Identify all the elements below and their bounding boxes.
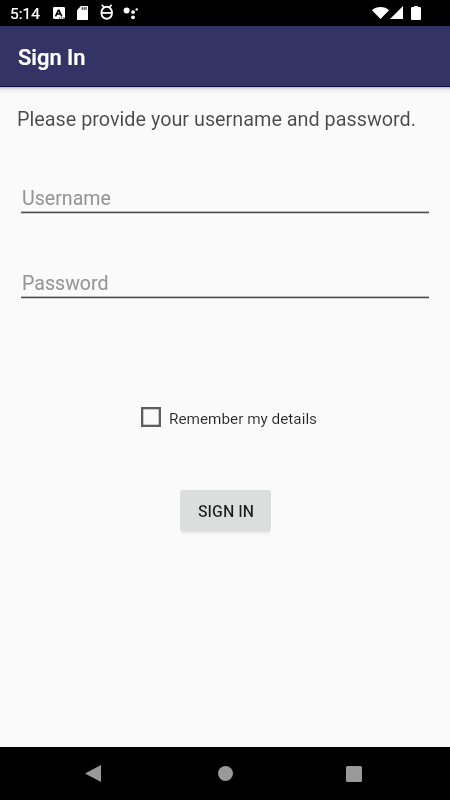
staticText: Username <box>22 187 111 210</box>
button[interactable]: SIGN IN <box>180 490 271 531</box>
staticText: Sign In <box>18 45 86 71</box>
staticText: Please provide your username and passwor… <box>17 108 416 131</box>
button[interactable]: Remember my details <box>136 402 321 432</box>
button[interactable]: Username <box>21 181 429 215</box>
staticText: Password <box>22 272 109 295</box>
button[interactable]: Home <box>195 747 255 800</box>
button[interactable]: Password <box>21 266 429 300</box>
staticText: 5:14 <box>10 5 40 23</box>
button[interactable]: Back <box>63 747 123 800</box>
staticText: Remember my details <box>169 410 318 428</box>
button[interactable]: Recent apps <box>324 747 384 800</box>
staticText: SIGN IN <box>198 502 254 521</box>
